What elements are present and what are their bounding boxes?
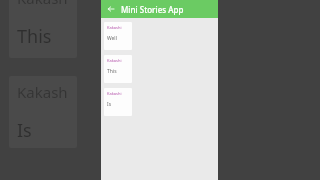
button[interactable]: Kakashi (104, 88, 132, 116)
button[interactable]: Kakashi (9, 76, 77, 148)
staticText: This (107, 68, 117, 75)
staticText: Mini Stories App (121, 4, 184, 15)
staticText: Kakashi (17, 0, 69, 8)
staticText: Kakashi (107, 25, 122, 30)
button[interactable]: Kakashi (104, 22, 132, 50)
button[interactable]: Back (105, 3, 117, 15)
staticText: Kakashi (107, 91, 122, 96)
button[interactable]: Kakashi (104, 55, 132, 83)
staticText: Kakashi (17, 82, 69, 102)
button[interactable]: Kakashi (9, 0, 77, 58)
staticText: Kakashi (107, 58, 122, 63)
staticText: Well (107, 35, 117, 42)
staticText: Is (107, 101, 112, 108)
staticText: This (17, 24, 52, 49)
staticText: Is (17, 118, 32, 143)
